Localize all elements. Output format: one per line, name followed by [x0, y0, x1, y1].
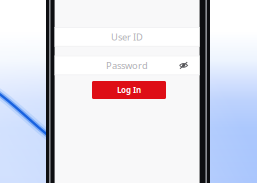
staticText: User ID: [111, 31, 143, 43]
staticText: Password: [106, 59, 148, 72]
staticText: Log In: [117, 85, 141, 95]
button[interactable]: Log In: [92, 81, 166, 99]
button[interactable]: Password: [55, 56, 200, 75]
button[interactable]: User ID: [55, 27, 200, 47]
